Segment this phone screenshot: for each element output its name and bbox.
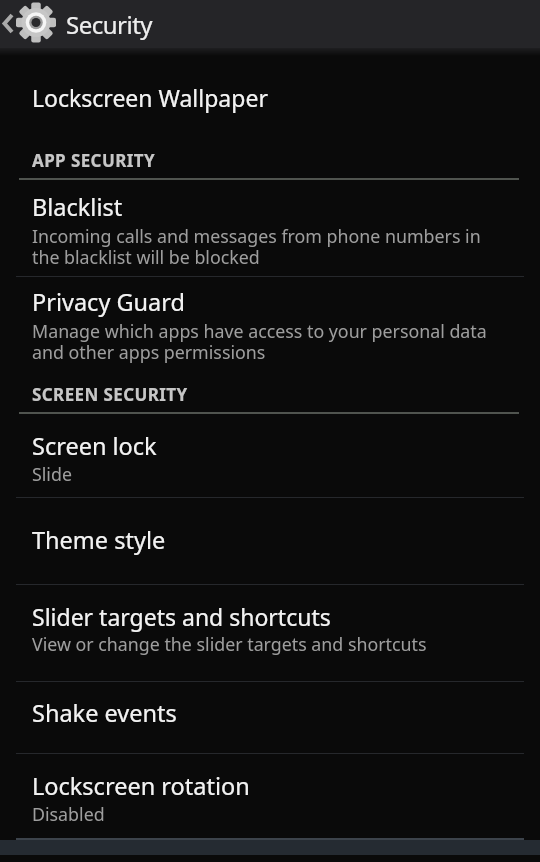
staticText: Theme style [32, 524, 166, 556]
staticText: Shake events [32, 697, 177, 729]
button[interactable]: Blacklist [0, 180, 540, 276]
button[interactable]: Slider targets and shortcuts [0, 585, 540, 681]
button[interactable]: Theme style [0, 498, 540, 584]
staticText: APP SECURITY [32, 149, 155, 172]
staticText: Lockscreen Wallpaper [32, 82, 268, 113]
button[interactable]: Lockscreen rotation [0, 754, 540, 838]
staticText: and other apps permissions [32, 340, 266, 364]
button[interactable]: Screen lock [0, 414, 540, 497]
staticText: Manage which apps have access to your pe… [32, 319, 487, 343]
staticText: Privacy Guard [32, 286, 185, 318]
button[interactable]: Security [0, 0, 540, 48]
staticText: View or change the slider targets and sh… [32, 632, 427, 656]
staticText: Disabled [32, 802, 105, 826]
staticText: Slider targets and shortcuts [32, 601, 331, 632]
staticText: Incoming calls and messages from phone n… [32, 224, 481, 248]
staticText: Security [66, 8, 153, 41]
staticText: Screen lock [32, 430, 157, 462]
staticText: Slide [32, 462, 72, 486]
button[interactable]: Privacy Guard [0, 277, 540, 372]
staticText: SCREEN SECURITY [32, 383, 188, 406]
button[interactable]: Lockscreen Wallpaper [0, 55, 540, 139]
staticText: Lockscreen rotation [32, 770, 250, 802]
staticText: Blacklist [32, 191, 123, 223]
button[interactable]: Shake events [0, 682, 540, 753]
staticText: the blacklist will be blocked [32, 245, 260, 269]
